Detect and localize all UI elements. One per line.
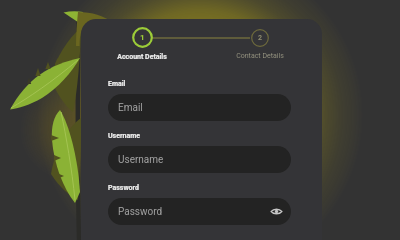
staticText: 2 (258, 34, 263, 42)
staticText: Contact Details (236, 52, 284, 60)
button[interactable]: Show password (268, 203, 285, 220)
staticText: Username (108, 132, 141, 140)
button[interactable]: Username (108, 146, 291, 173)
staticText: Account Details (117, 53, 167, 61)
button[interactable]: 1 (105, 27, 179, 61)
staticText: Password (118, 206, 163, 218)
button[interactable]: Email (108, 94, 291, 121)
button[interactable]: 2 (223, 29, 297, 60)
staticText: Email (108, 80, 126, 88)
staticText: Password (108, 184, 139, 192)
staticText: Email (118, 102, 143, 114)
staticText: 1 (140, 33, 145, 42)
staticText: Username (118, 154, 164, 166)
button[interactable]: Password (108, 198, 291, 225)
